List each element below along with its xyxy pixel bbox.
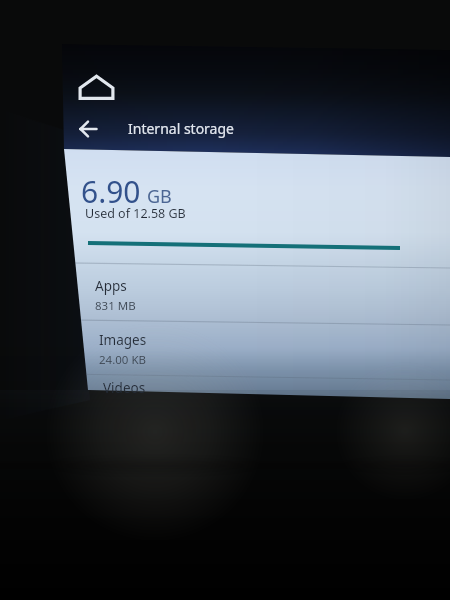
staticText: 24.00 KB <box>99 352 146 368</box>
button[interactable]: Videos <box>87 371 427 405</box>
staticText: Images <box>99 331 147 349</box>
staticText: 831 MB <box>95 298 136 314</box>
button[interactable]: Images <box>83 323 423 376</box>
staticText: Used of 12.58 GB <box>85 205 186 222</box>
staticText: 6.90 <box>81 171 141 212</box>
button[interactable]: Home <box>76 74 117 101</box>
button[interactable]: Back <box>72 113 104 145</box>
button[interactable]: Internal storage <box>118 112 238 144</box>
staticText: Apps <box>95 277 127 295</box>
staticText: Videos <box>103 379 146 397</box>
staticText: GB <box>147 184 172 209</box>
button[interactable]: Apps <box>79 269 419 322</box>
staticText: Internal storage <box>128 119 234 138</box>
